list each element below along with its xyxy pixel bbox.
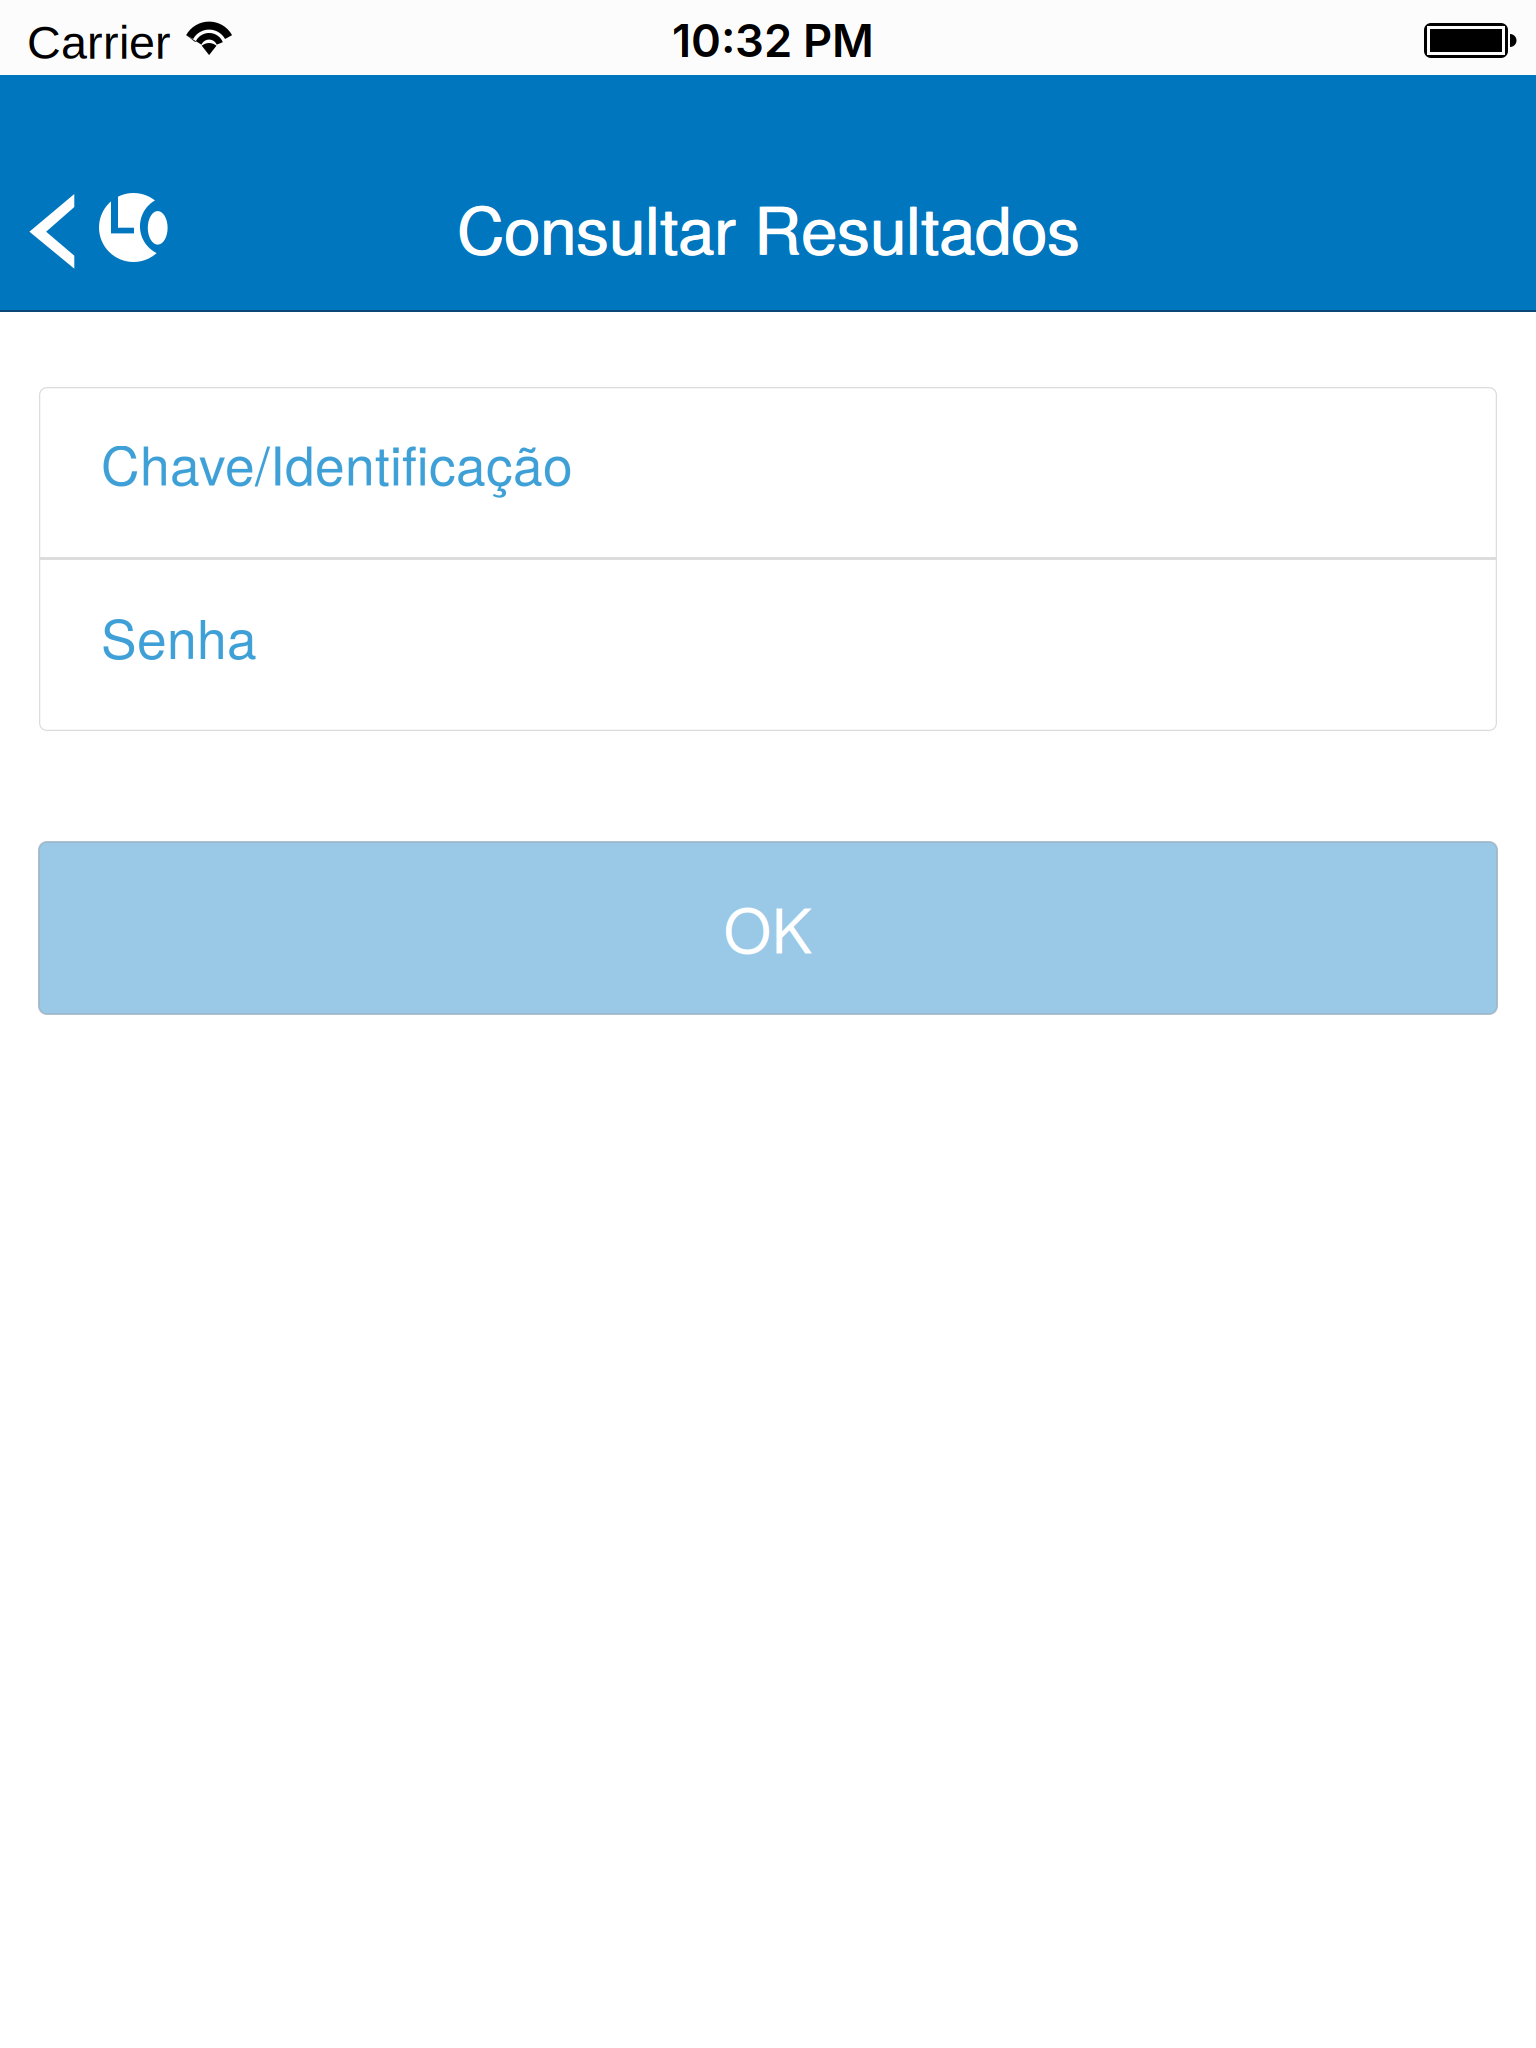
button[interactable]: Chave/Identificação (39, 387, 1497, 557)
staticText: Consultar Resultados (458, 180, 1081, 273)
staticText: 10:32 PM (672, 13, 874, 68)
staticText: Senha (101, 598, 257, 674)
button[interactable]: Senha (39, 560, 1497, 731)
staticText: OK (723, 883, 812, 971)
button[interactable]: Voltar (0, 75, 191, 312)
staticText: Carrier (27, 16, 171, 68)
button[interactable]: OK (39, 842, 1497, 1014)
staticText: Consultar Resultados (456, 180, 1079, 273)
staticText: Chave/Identificação (101, 424, 573, 501)
